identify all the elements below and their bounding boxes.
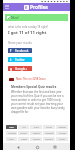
button[interactable]: Science <box>43 131 55 135</box>
button[interactable]: Games <box>43 137 55 141</box>
button[interactable]: Animal <box>56 125 68 129</box>
staticText: Whether that was the first and best year… <box>11 90 66 114</box>
button[interactable]: Movies <box>6 131 17 135</box>
staticText: Cars <box>34 126 39 129</box>
staticText: Games <box>45 138 53 141</box>
button[interactable]: t <box>8 57 32 62</box>
staticText: Now This on 3298 Issue <box>16 77 46 81</box>
button[interactable]: Back <box>15 144 21 150</box>
staticText: Facebook <box>15 49 29 53</box>
button[interactable]: Recents <box>52 144 58 150</box>
button[interactable]: f <box>8 48 32 53</box>
staticText: Profiles <box>30 4 49 11</box>
button[interactable]: Menu <box>4 4 10 10</box>
button[interactable]: Books <box>30 131 42 135</box>
staticText: Google+ <box>15 67 27 71</box>
button[interactable]: News <box>18 137 29 141</box>
button[interactable]: Cars <box>30 125 42 129</box>
staticText: what is the sofa sunday 18 right? <box>8 25 48 29</box>
button[interactable]: Tags <box>6 125 17 129</box>
staticText: I got 11 of 11 right <box>8 30 47 36</box>
staticText: f <box>10 49 12 53</box>
staticText: More <box>59 138 65 141</box>
staticText: News <box>21 138 27 141</box>
button[interactable]: Art <box>18 125 29 129</box>
staticText: Science <box>45 132 54 135</box>
staticText: Books <box>33 132 40 135</box>
staticText: K <box>25 5 28 10</box>
button[interactable]: Music <box>18 131 29 135</box>
button[interactable]: Home <box>34 144 40 150</box>
staticText: Travel <box>59 132 66 135</box>
staticText: Tags <box>9 126 14 129</box>
staticText: t <box>10 58 12 62</box>
staticText: Art <box>22 126 26 129</box>
staticText: Music <box>20 132 27 135</box>
staticText: Animal <box>58 126 66 129</box>
staticText: Share your results <box>8 41 32 45</box>
button[interactable]: Food <box>43 125 55 129</box>
button[interactable]: g <box>8 66 32 71</box>
staticText: Sports <box>33 138 40 141</box>
staticText: Movies <box>8 132 16 135</box>
button[interactable]: More <box>56 137 68 141</box>
staticText: Members Special Quiz results <box>11 85 57 89</box>
staticText: Tech <box>9 138 14 141</box>
button[interactable]: Sports <box>30 137 42 141</box>
staticText: Nice! <box>11 15 19 20</box>
button[interactable]: Travel <box>56 131 68 135</box>
staticText: Food <box>46 126 52 129</box>
staticText: Twitter <box>15 58 25 62</box>
button[interactable]: Tech <box>6 137 17 141</box>
staticText: g <box>10 67 12 71</box>
